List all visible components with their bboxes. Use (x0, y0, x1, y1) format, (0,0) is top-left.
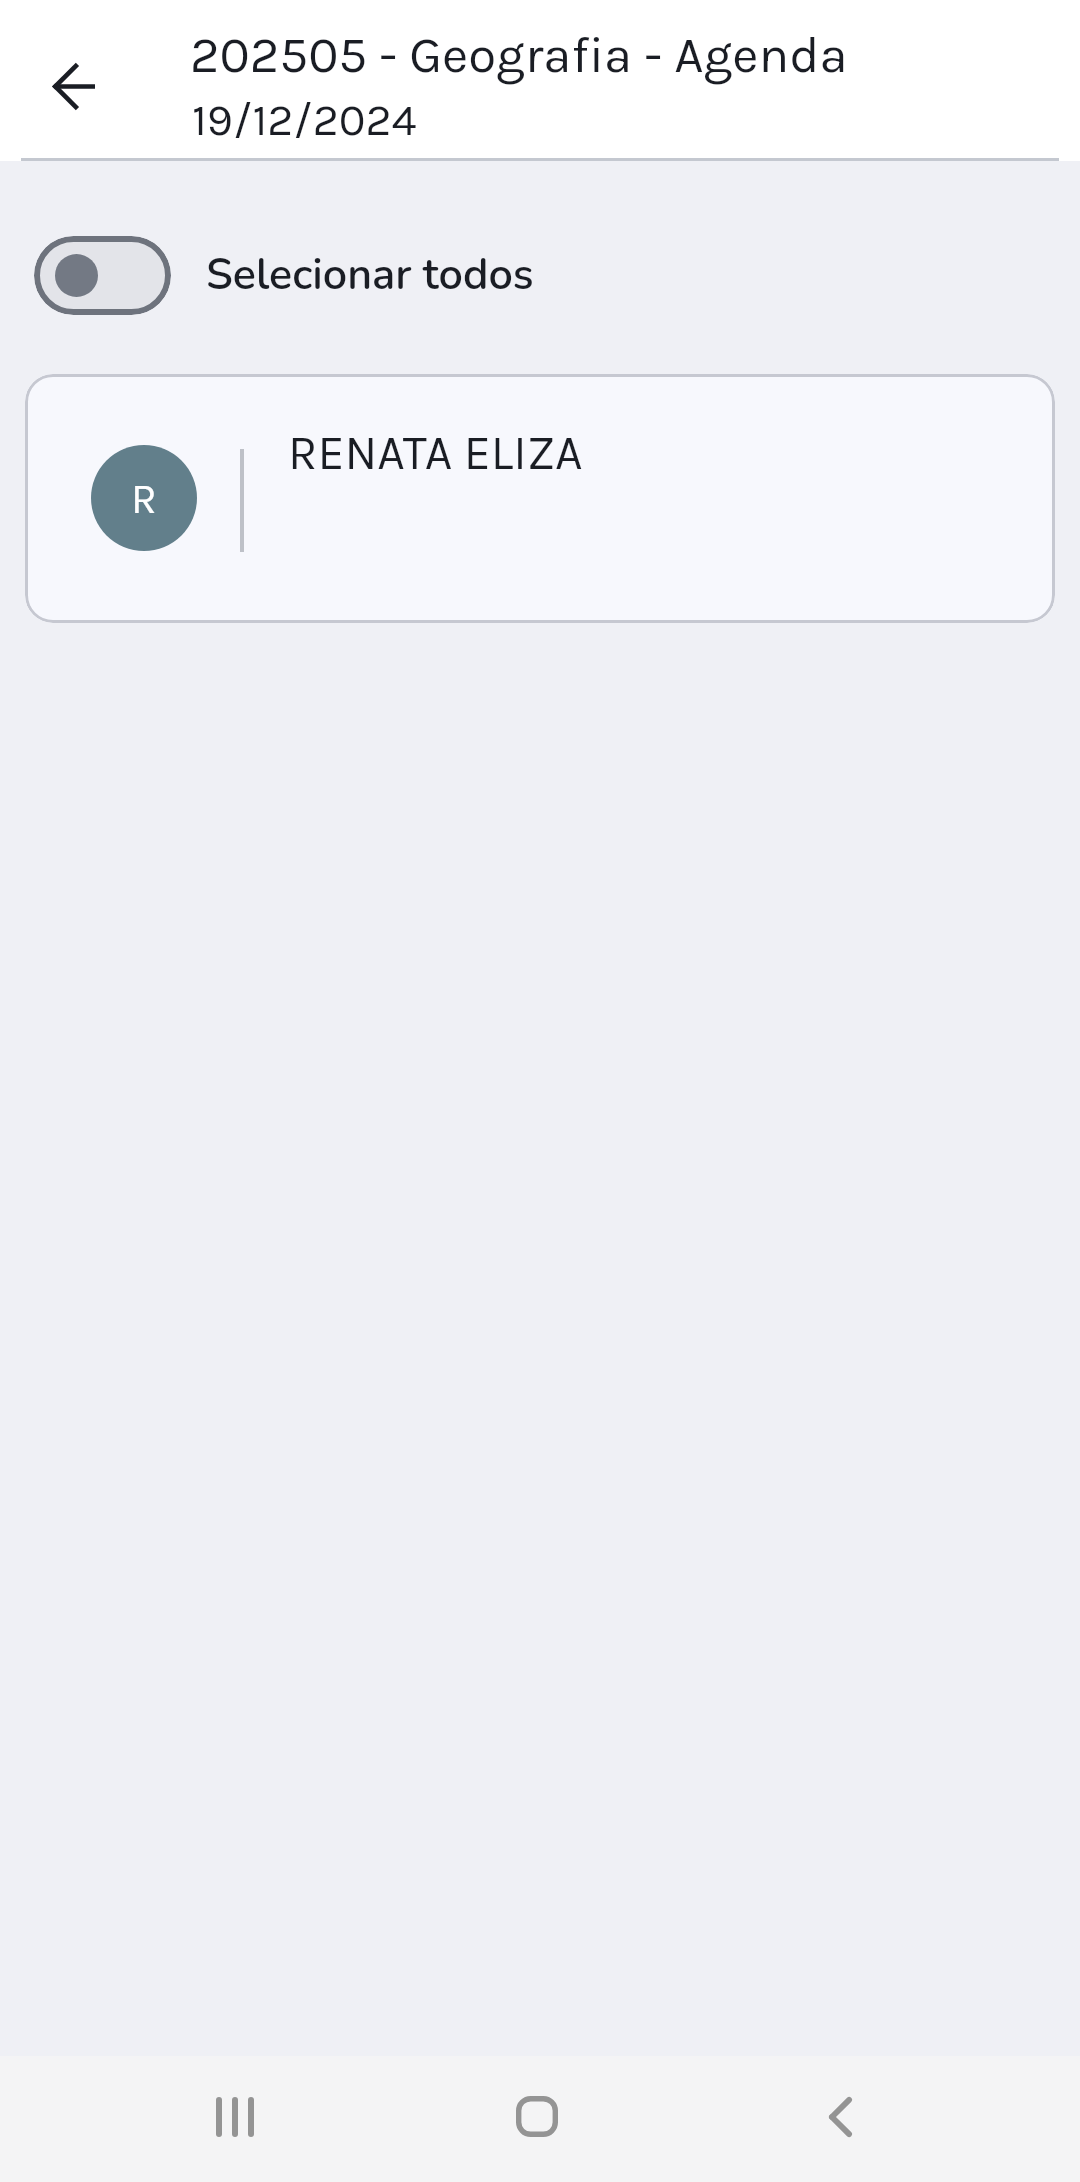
button[interactable]: Home (477, 2053, 597, 2179)
staticText: Selecionar todos (206, 246, 534, 305)
button[interactable]: Recent apps (175, 2054, 295, 2180)
button[interactable]: Back (30, 42, 118, 130)
staticText: RENATA ELIZA (288, 425, 583, 481)
button[interactable]: R (25, 374, 1055, 623)
button[interactable]: Back (780, 2054, 900, 2180)
button[interactable]: Selecionar todos (0, 195, 1080, 355)
staticText: R (131, 474, 157, 523)
staticText: 19/12/2024 (192, 94, 417, 147)
staticText: 202505 - Geografia - Agenda (190, 25, 848, 85)
